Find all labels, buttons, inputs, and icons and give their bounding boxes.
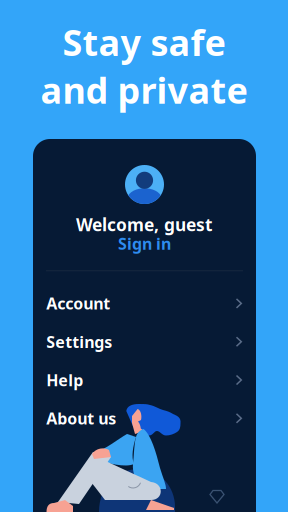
button[interactable]: Help [33, 361, 256, 399]
staticText: Stay safe [62, 18, 225, 66]
staticText: About us [46, 408, 116, 429]
button[interactable]: Home [51, 482, 93, 510]
staticText: Settings [46, 331, 112, 352]
button[interactable]: Search [99, 482, 141, 510]
button[interactable]: Settings [33, 323, 256, 361]
staticText: Sign in [118, 233, 171, 254]
staticText: Welcome, guest [76, 213, 213, 236]
button[interactable]: Premium [196, 482, 238, 510]
button[interactable]: About us [33, 399, 256, 437]
button[interactable]: Saved [148, 482, 190, 510]
button[interactable]: Sign in [110, 231, 179, 256]
staticText: Account [46, 293, 110, 314]
staticText: Help [46, 369, 83, 391]
staticText: and private [40, 66, 247, 114]
button[interactable]: Account [33, 284, 256, 323]
